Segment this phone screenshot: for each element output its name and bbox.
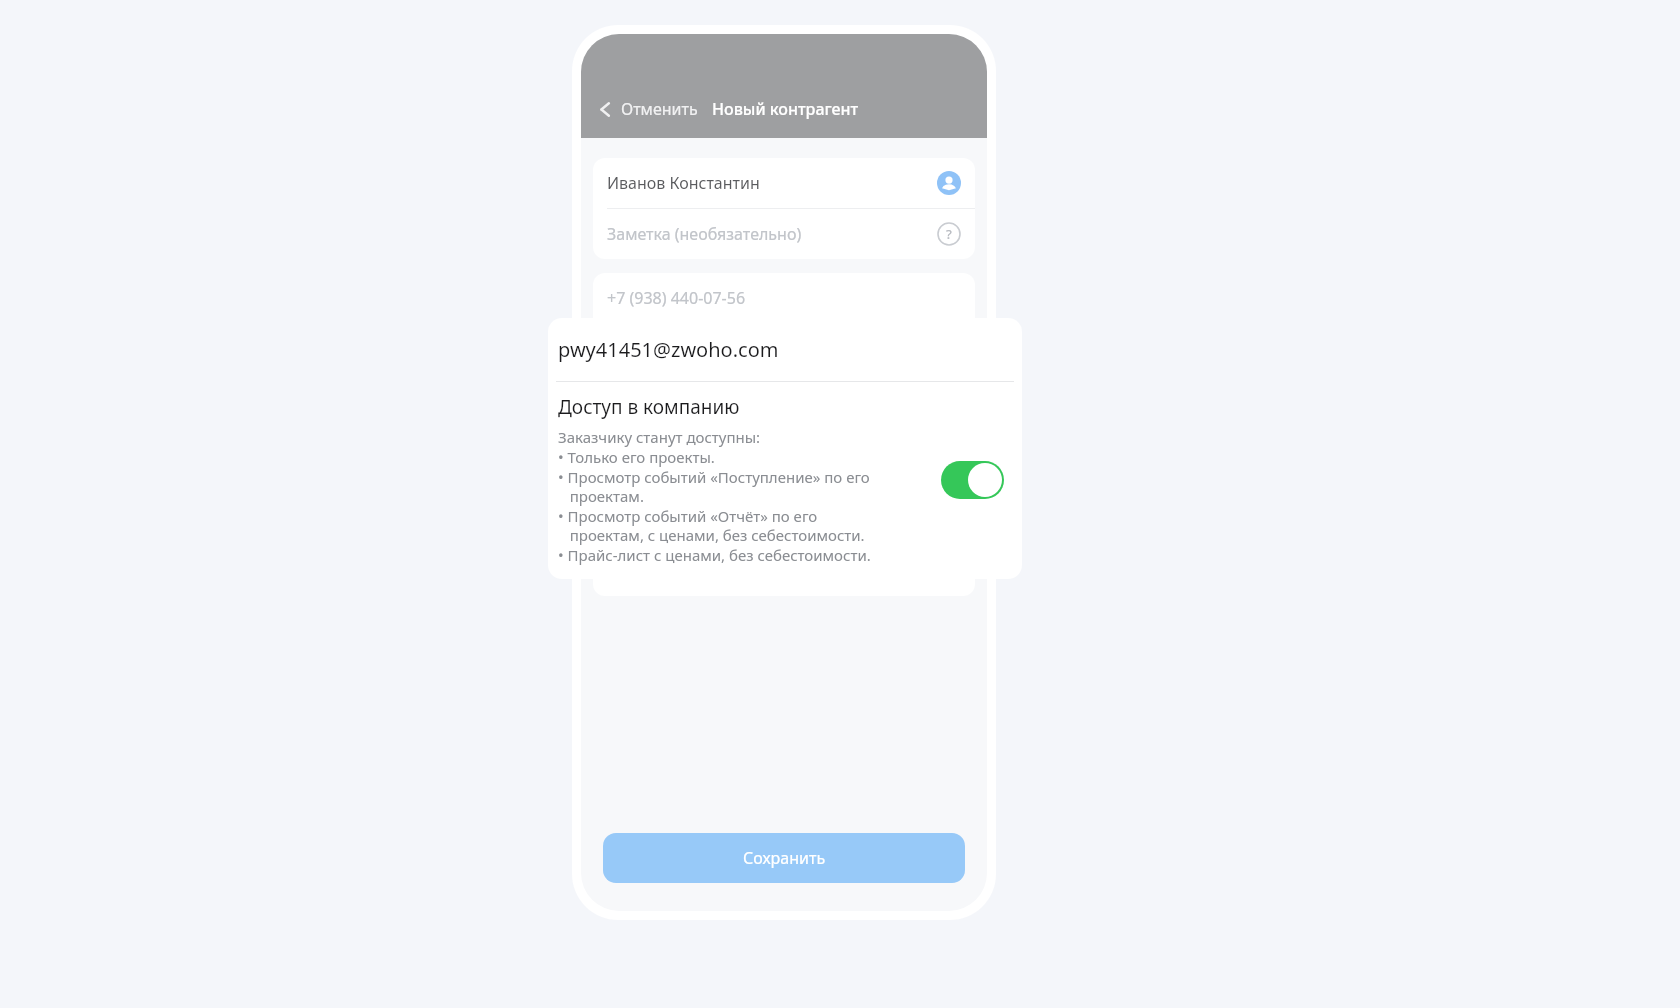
button[interactable]: Отменить	[591, 94, 704, 124]
button[interactable]: +7 (938) 440-07-56	[593, 273, 975, 323]
staticText: • Просмотр событий «Отчёт» по его проект…	[558, 506, 865, 545]
button[interactable]: pwy41451@zwoho.com	[548, 318, 1022, 381]
staticText: Заказчик	[607, 560, 961, 582]
button[interactable]: Сохранить	[603, 833, 965, 883]
staticText: • Только его проекты.	[558, 447, 715, 467]
staticText: Отменить	[621, 98, 698, 120]
button[interactable]: Выбрать контакт	[937, 171, 961, 195]
staticText: ?	[946, 225, 952, 243]
button[interactable]: Доступ в компанию	[941, 461, 1004, 499]
staticText: Сохранить	[743, 847, 826, 869]
staticText: Заказчику станут доступны:	[558, 427, 761, 447]
staticText: Заметка (необязательно)	[607, 223, 937, 245]
button[interactable]: Заметка (необязательно)	[593, 209, 975, 259]
staticText: pwy41451@zwoho.com	[558, 336, 779, 363]
staticText: Доступ в компанию	[558, 394, 740, 420]
staticText: Иванов Константин	[607, 172, 937, 194]
button[interactable]: Заказчик	[593, 546, 975, 596]
staticText: +7 (938) 440-07-56	[607, 287, 961, 309]
staticText: • Прайс-лист с ценами, без себестоимости…	[558, 545, 871, 565]
button[interactable]: Справка	[937, 222, 961, 246]
button[interactable]: Доступ в компанию	[548, 382, 1022, 579]
staticText: • Просмотр событий «Поступление» по его …	[558, 467, 870, 506]
button[interactable]: Иванов Константин	[593, 158, 975, 208]
staticText: Новый контрагент	[712, 98, 859, 120]
